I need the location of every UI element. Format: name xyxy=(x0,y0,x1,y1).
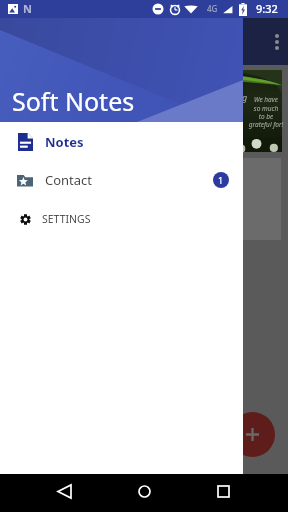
button[interactable] xyxy=(130,477,158,505)
button[interactable]: SETTINGS xyxy=(0,200,243,238)
button[interactable] xyxy=(180,158,281,240)
staticText: Contact xyxy=(45,171,93,189)
button[interactable] xyxy=(209,477,237,505)
button[interactable] xyxy=(50,477,78,505)
staticText: Notes xyxy=(45,133,84,151)
staticText: SETTINGS xyxy=(42,212,91,226)
button[interactable]: We have so much to be grateful for! xyxy=(180,70,282,152)
staticText: 9:32 xyxy=(256,1,278,16)
button[interactable]: Contact xyxy=(0,161,243,199)
button[interactable]: Notes xyxy=(0,123,243,161)
staticText: 4G xyxy=(207,3,218,14)
button[interactable]: More options xyxy=(275,34,279,50)
staticText: N xyxy=(23,1,32,16)
staticText: 1 xyxy=(218,174,224,186)
button[interactable]: Add note xyxy=(230,412,275,457)
staticText: We have so much to be grateful for! xyxy=(246,95,286,129)
staticText: Soft Notes xyxy=(12,84,135,118)
staticText: g xyxy=(242,91,248,103)
